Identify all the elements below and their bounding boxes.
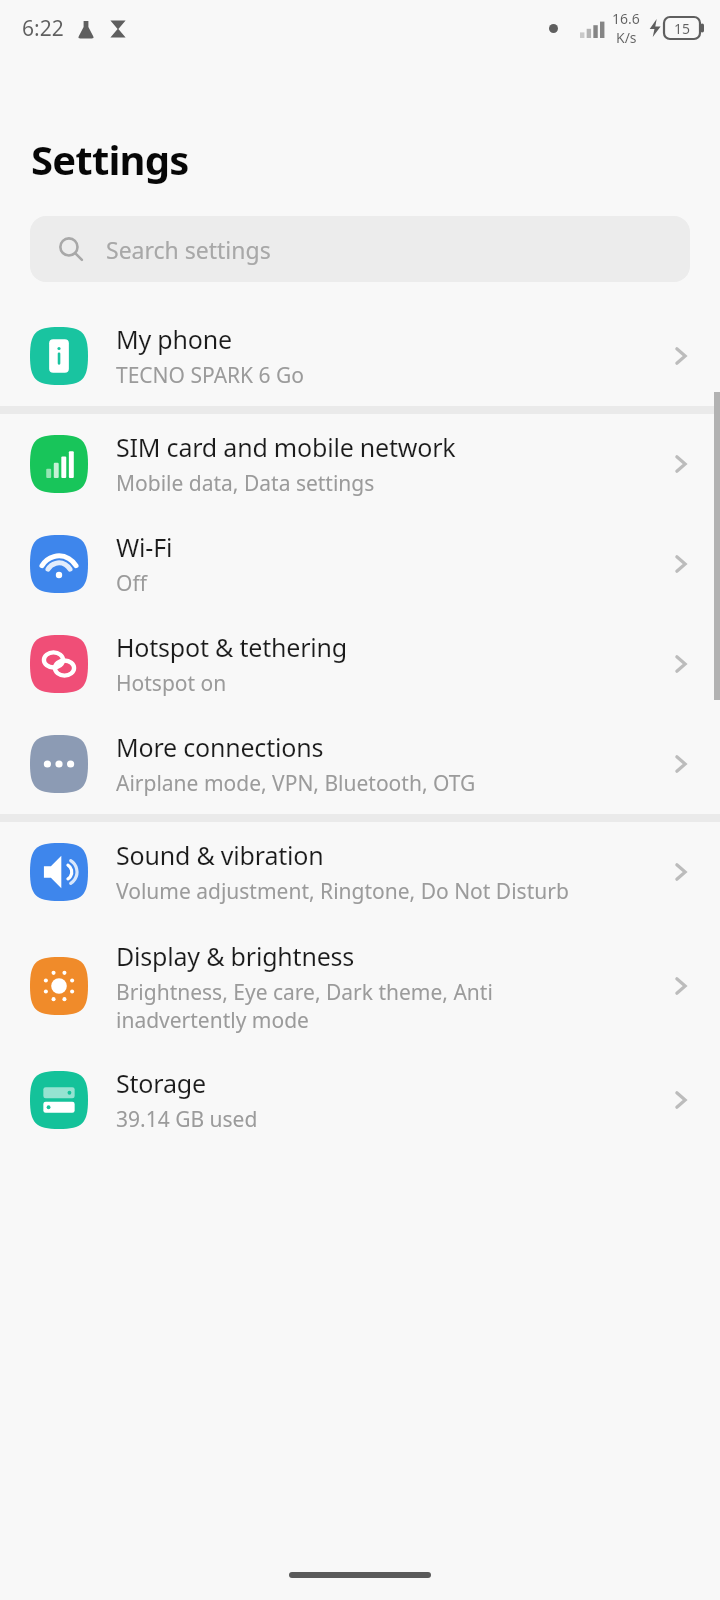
button[interactable]: Wi-Fi bbox=[0, 514, 720, 614]
staticText: Display & brightness bbox=[116, 939, 355, 973]
staticText: Mobile data, Data settings bbox=[116, 469, 375, 498]
button[interactable]: SIM card and mobile network bbox=[0, 414, 720, 514]
staticText: 6:22 bbox=[22, 14, 64, 43]
staticText: 16.6 bbox=[612, 9, 640, 28]
staticText: Search settings bbox=[106, 234, 271, 265]
staticText: More connections bbox=[116, 730, 324, 764]
staticText: My phone bbox=[116, 322, 232, 356]
staticText: Storage bbox=[116, 1066, 206, 1100]
staticText: Volume adjustment, Ringtone, Do Not Dist… bbox=[116, 877, 569, 906]
staticText: Hotspot on bbox=[116, 669, 227, 698]
button[interactable]: Display & brightness bbox=[0, 922, 720, 1050]
staticText: Brightness, Eye care, Dark theme, Anti i… bbox=[116, 978, 493, 1034]
staticText: Airplane mode, VPN, Bluetooth, OTG bbox=[116, 769, 476, 798]
button[interactable]: Storage bbox=[0, 1050, 720, 1150]
staticText: K/s bbox=[616, 28, 637, 47]
staticText: TECNO SPARK 6 Go bbox=[116, 361, 305, 390]
staticText: Off bbox=[116, 569, 147, 598]
button[interactable]: Hotspot & tethering bbox=[0, 614, 720, 714]
button[interactable]: My phone bbox=[0, 306, 720, 406]
staticText: Sound & vibration bbox=[116, 838, 324, 872]
staticText: 15 bbox=[674, 19, 691, 38]
button[interactable]: More connections bbox=[0, 714, 720, 814]
button[interactable]: Search settings bbox=[30, 216, 690, 282]
staticText: SIM card and mobile network bbox=[116, 430, 456, 464]
button[interactable]: Sound & vibration bbox=[0, 822, 720, 922]
staticText: Hotspot & tethering bbox=[116, 630, 347, 664]
staticText: 39.14 GB used bbox=[116, 1105, 258, 1134]
staticText: Settings bbox=[31, 132, 189, 186]
staticText: Wi-Fi bbox=[116, 530, 173, 564]
